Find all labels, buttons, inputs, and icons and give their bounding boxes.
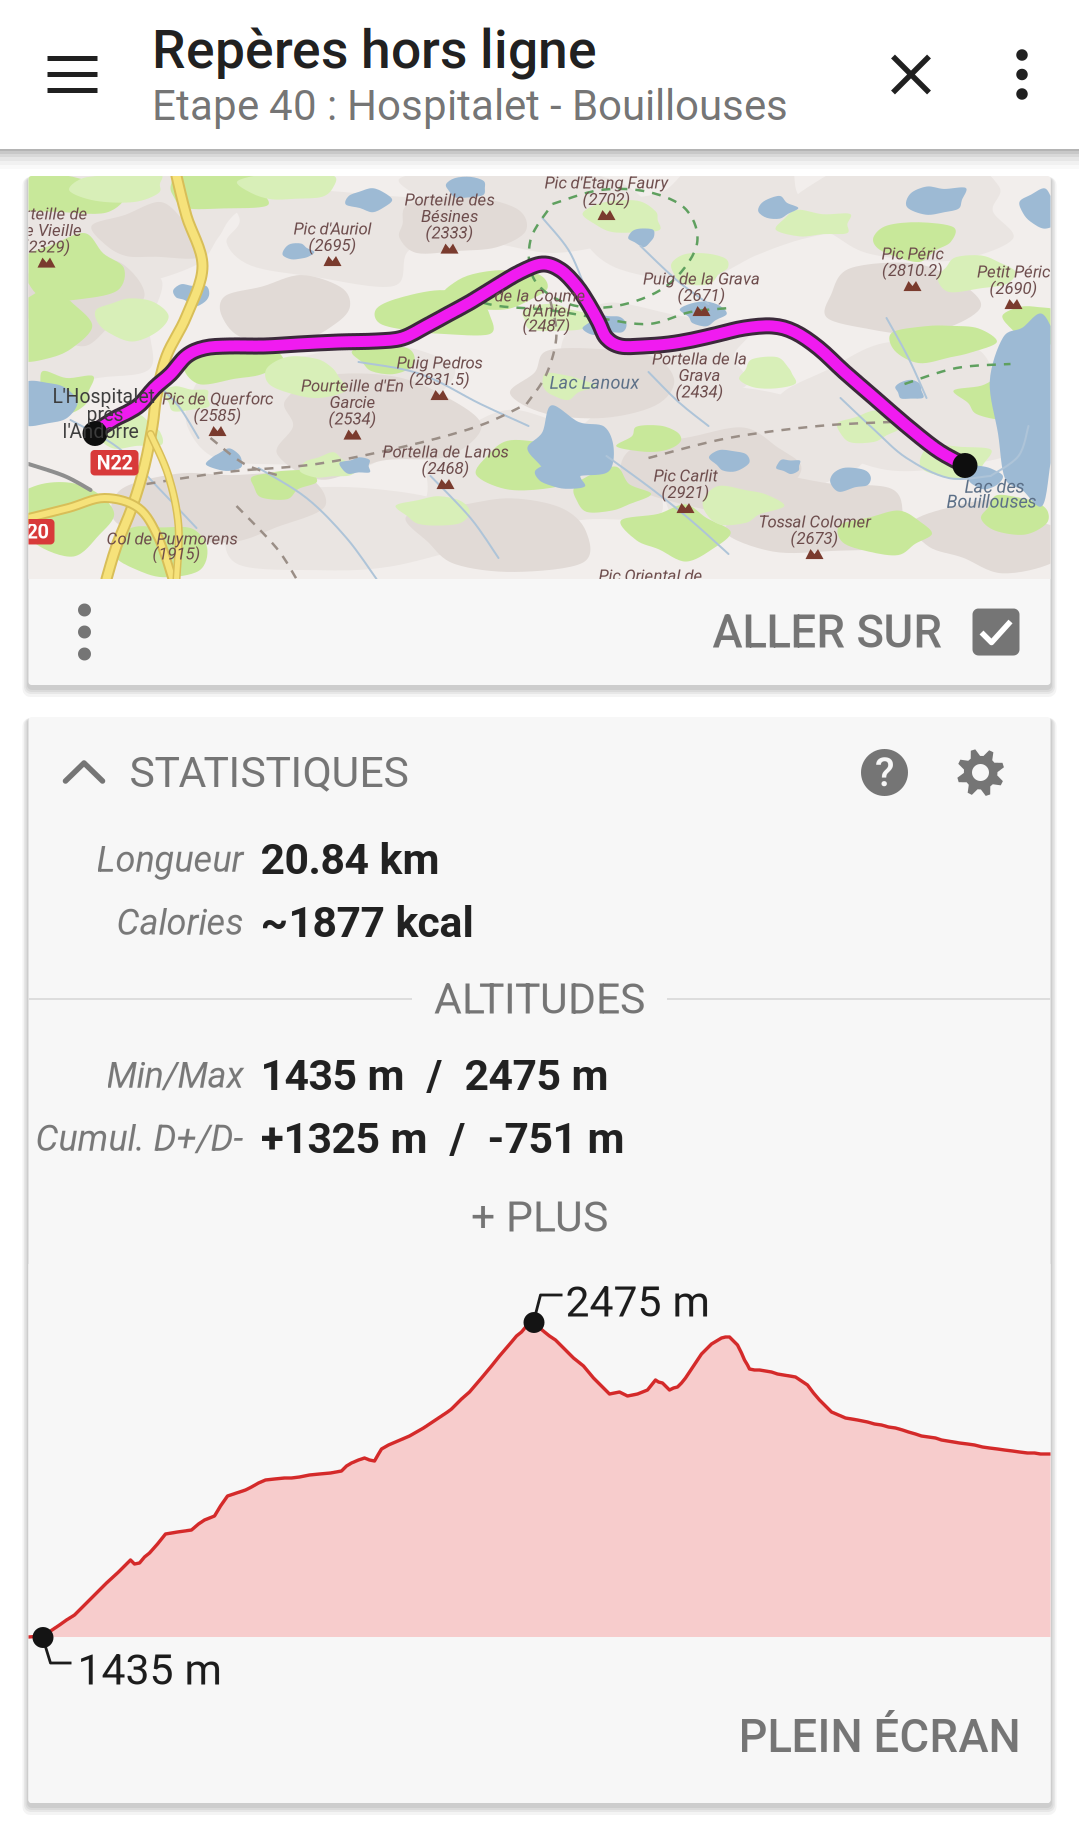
staticText: Porteille des (404, 190, 494, 209)
staticText: Pic d'Etang Faury (544, 173, 668, 192)
staticText: (2702) (582, 189, 630, 209)
button[interactable]: More options (965, 0, 1079, 149)
staticText: Lac des (964, 476, 1024, 497)
staticText: 1435 m (77, 1645, 221, 1695)
staticText: L'Hospitalet (52, 385, 154, 408)
staticText: Tossal Colomer (758, 512, 870, 531)
button[interactable]: + PLUS (28, 1170, 1050, 1264)
staticText: Petit Péric (977, 262, 1050, 281)
staticText: N22 (96, 451, 132, 474)
staticText: ~1877 kcal (260, 897, 473, 947)
staticText: de la Coume (494, 286, 585, 305)
staticText: Pic Oriental de (598, 566, 702, 585)
button[interactable]: Map options (28, 579, 140, 685)
staticText: PLEIN ÉCRAN (738, 1710, 1020, 1763)
staticText: Pic Carlit (653, 466, 717, 485)
staticText: Portella de Lanos (382, 442, 508, 461)
staticText: (1915) (152, 544, 200, 563)
staticText: Pic de Querforc (162, 389, 273, 408)
staticText: STATISTIQUES (129, 747, 408, 797)
staticText: Pourteille d'En (301, 376, 404, 395)
staticText: ALTITUDES (434, 974, 645, 1024)
staticText: Garcie (329, 392, 375, 412)
staticText: Puig de la Grava (643, 269, 760, 288)
staticText: Lac Lanoux (549, 372, 639, 393)
staticText: (2921) (661, 482, 709, 502)
staticText: Min/Max (106, 1054, 243, 1097)
staticText: Cumul. D+/D- (35, 1117, 243, 1160)
staticText: Calories (116, 901, 243, 944)
button[interactable]: Help (836, 717, 932, 828)
staticText: près (86, 403, 123, 426)
staticText: ALLER SUR (712, 605, 942, 658)
button[interactable]: Close (857, 0, 965, 149)
button[interactable]: Menu (0, 0, 145, 149)
staticText: Etape 40 : Hospitalet - Bouillouses (152, 81, 788, 130)
staticText: (2585) (193, 405, 241, 425)
button[interactable]: PLEIN ÉCRAN (718, 1696, 1050, 1803)
staticText: + PLUS (471, 1192, 608, 1242)
staticText: Longueur (96, 838, 243, 881)
staticText: 2475 m (565, 1277, 709, 1327)
staticText: ? (875, 749, 894, 796)
button[interactable]: Settings (932, 717, 1028, 828)
staticText: Porteille de (5, 204, 87, 223)
staticText: 20 (26, 520, 48, 543)
staticText: (2487) (522, 316, 570, 335)
staticText: Pic Péric (881, 244, 943, 263)
staticText: (2534) (328, 409, 376, 429)
staticText: +1325 m / -751 m (260, 1113, 624, 1163)
staticText: (2468) (421, 458, 469, 478)
staticText: Col de Puymorens (106, 529, 237, 548)
button[interactable]: STATISTIQUES (28, 717, 408, 828)
staticText: (2673) (790, 528, 838, 548)
staticText: (2333) (425, 223, 473, 243)
staticText: (2329) (22, 237, 70, 257)
staticText: 20.84 km (260, 834, 439, 884)
staticText: me Vieille (11, 220, 82, 240)
staticText: (2831.5) (409, 369, 470, 389)
staticText: Puig Pedros (396, 353, 482, 372)
staticText: (2434) (675, 382, 723, 402)
staticText: l'Andorre (62, 420, 138, 443)
staticText: (2690) (989, 278, 1037, 298)
staticText: Repères hors ligne (152, 19, 597, 81)
staticText: Bouillouses (946, 491, 1036, 512)
staticText: (2671) (677, 285, 725, 305)
staticText: 1435 m / 2475 m (260, 1050, 608, 1100)
staticText: Portella de la (652, 349, 747, 368)
staticText: Pic d'Auriol (293, 219, 371, 238)
staticText: Bésines (421, 206, 478, 226)
staticText: (2810.2) (882, 260, 943, 280)
staticText: Grava (678, 365, 720, 385)
staticText: (2695) (308, 235, 356, 255)
staticText: d'Aniel (522, 301, 570, 320)
button[interactable]: ALLER SUR (712, 579, 1050, 685)
